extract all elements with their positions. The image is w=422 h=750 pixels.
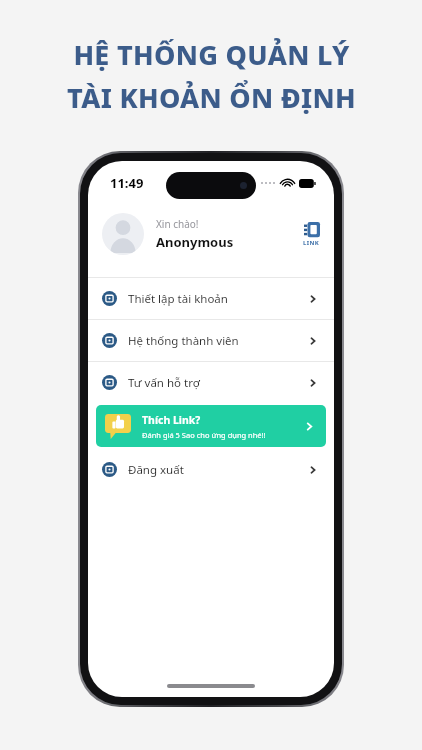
staticText: 11:49	[110, 174, 144, 192]
button[interactable]: Thích Link?	[96, 405, 326, 447]
staticText: Tư vấn hỗ trợ	[128, 375, 200, 391]
button[interactable]: Tư vấn hỗ trợ	[88, 362, 334, 403]
button[interactable]: Thiết lập tài khoản	[88, 278, 334, 319]
staticText: Thích Link?	[142, 413, 201, 427]
button[interactable]: LINK app logo	[303, 222, 320, 247]
staticText: HỆ THỐNG QUẢN LÝ	[73, 36, 350, 73]
button[interactable]: Đăng xuất	[88, 449, 334, 490]
staticText: Xin chào!	[156, 217, 199, 231]
staticText: Anonymous	[156, 233, 234, 251]
staticText: LINK	[303, 239, 320, 247]
button[interactable]: Hệ thống thành viên	[88, 320, 334, 361]
button[interactable]: Profile avatar	[102, 213, 144, 255]
staticText: Đăng xuất	[128, 462, 184, 478]
staticText: TÀI KHOẢN ỔN ĐỊNH	[67, 79, 356, 116]
staticText: Thiết lập tài khoản	[128, 291, 228, 307]
staticText: Đánh giá 5 Sao cho ứng dụng nhé!!	[142, 430, 266, 440]
staticText: Hệ thống thành viên	[128, 333, 239, 349]
